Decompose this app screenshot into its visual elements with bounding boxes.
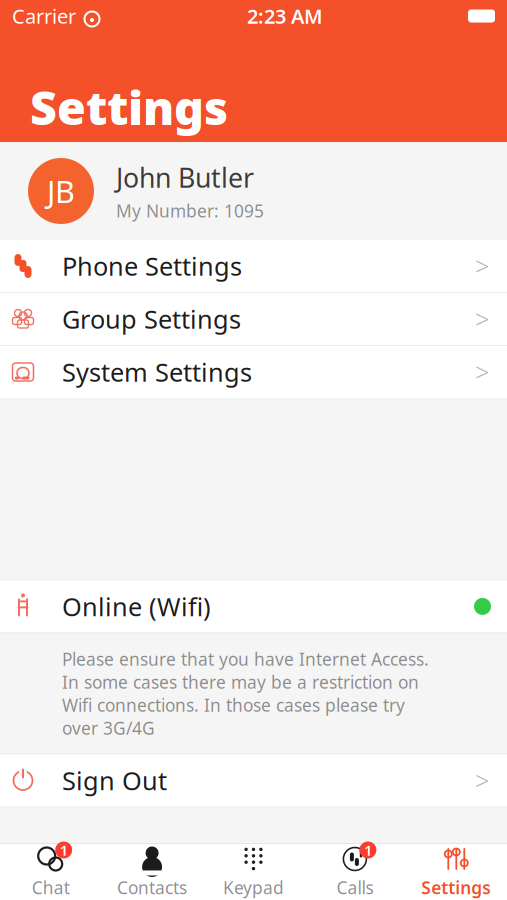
staticText: System Settings <box>62 355 252 389</box>
button[interactable]: Contacts <box>101 844 203 900</box>
staticText: Please ensure that you have Internet Acc… <box>62 647 429 739</box>
staticText: Phone Settings <box>62 249 242 283</box>
button[interactable]: 1 <box>0 844 101 900</box>
staticText: > <box>475 764 489 797</box>
staticText: Sign Out <box>62 764 167 797</box>
staticText: My Number: 1095 <box>116 199 264 222</box>
staticText: Contacts <box>117 876 187 899</box>
button[interactable]: Sign Out <box>0 754 507 806</box>
staticText: > <box>475 302 489 336</box>
button[interactable]: Phone Settings <box>0 240 507 292</box>
staticText: JB <box>47 171 75 211</box>
button[interactable]: Online (Wifi) <box>0 580 507 632</box>
staticText: Group Settings <box>62 302 241 336</box>
staticText: Settings <box>30 76 228 138</box>
staticText: Keypad <box>223 876 284 899</box>
staticText: Chat <box>32 876 70 899</box>
staticText: Carrier <box>12 3 76 29</box>
staticText: 1 <box>60 840 68 860</box>
staticText: > <box>475 249 489 283</box>
staticText: Calls <box>336 876 373 899</box>
button[interactable]: System Settings <box>0 346 507 398</box>
button[interactable]: 1 <box>304 844 406 900</box>
button[interactable]: Group Settings <box>0 293 507 345</box>
staticText: John Butler <box>116 160 254 195</box>
staticText: > <box>475 355 489 389</box>
staticText: 2:23 AM <box>247 3 323 29</box>
staticText: 1 <box>364 840 372 860</box>
staticText: Online (Wifi) <box>62 590 211 623</box>
staticText: Settings <box>421 876 491 899</box>
button[interactable]: Settings <box>406 844 507 900</box>
button[interactable]: Keypad <box>203 844 304 900</box>
